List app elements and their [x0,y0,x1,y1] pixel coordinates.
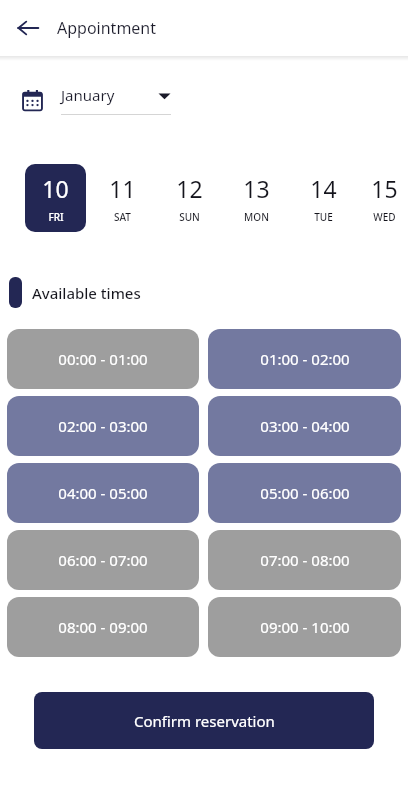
staticText: SUN [179,210,200,224]
staticText: 03:00 - 04:00 [260,416,350,436]
staticText: 01:00 - 02:00 [260,349,350,369]
staticText: 00:00 - 01:00 [58,349,148,369]
staticText: 04:00 - 05:00 [58,483,148,503]
button[interactable]: 07:00 - 08:00 [208,530,401,590]
button[interactable]: 13 [226,164,287,232]
button[interactable]: Confirm reservation [34,692,374,749]
button[interactable]: 12 [159,164,220,232]
staticText: Confirm reservation [134,711,275,731]
button[interactable]: 11 [92,164,153,232]
staticText: SAT [114,210,131,224]
button[interactable]: 00:00 - 01:00 [7,329,199,389]
button[interactable]: 02:00 - 03:00 [7,396,199,456]
staticText: 11 [109,173,136,204]
staticText: 05:00 - 06:00 [260,483,350,503]
button[interactable]: 01:00 - 02:00 [208,329,401,389]
staticText: 08:00 - 09:00 [58,617,148,637]
staticText: WED [373,210,396,224]
staticText: 10 [42,173,69,204]
button[interactable]: 10 [25,164,86,232]
button[interactable]: Back [11,11,45,45]
staticText: 15 [371,173,398,204]
button[interactable]: 06:00 - 07:00 [7,530,199,590]
button[interactable]: 15 [360,164,408,232]
staticText: 09:00 - 10:00 [260,617,350,637]
button[interactable]: 03:00 - 04:00 [208,396,401,456]
staticText: 02:00 - 03:00 [58,416,148,436]
staticText: TUE [314,210,333,224]
button[interactable]: 09:00 - 10:00 [208,597,401,657]
staticText: 07:00 - 08:00 [260,550,350,570]
button[interactable]: 14 [293,164,354,232]
button[interactable]: 04:00 - 05:00 [7,463,199,523]
staticText: 13 [243,173,270,204]
staticText: FRI [48,210,64,224]
button[interactable]: 05:00 - 06:00 [208,463,401,523]
staticText: MON [244,210,269,224]
button[interactable]: 08:00 - 09:00 [7,597,199,657]
staticText: 14 [310,173,337,204]
staticText: Appointment [57,17,157,39]
staticText: January [61,85,115,105]
staticText: Available times [32,283,141,303]
staticText: 06:00 - 07:00 [58,550,148,570]
staticText: 12 [176,173,203,204]
button[interactable]: January [61,85,171,105]
